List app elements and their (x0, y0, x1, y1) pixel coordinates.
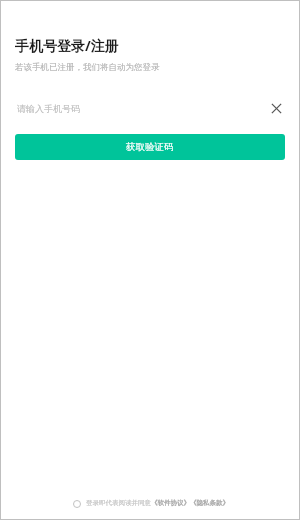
staticText: 手机号登录/注册 (15, 36, 119, 55)
button[interactable]: 请输入手机号码 (0, 94, 300, 122)
button[interactable]: Clear phone number (266, 98, 286, 118)
button[interactable]: 获取验证码 (15, 134, 285, 160)
staticText: 登录即代表阅读并同意 (86, 499, 151, 507)
staticText: 获取验证码 (126, 141, 174, 153)
staticText: 请输入手机号码 (17, 103, 80, 114)
button[interactable]: 《软件协议》 (151, 499, 190, 507)
staticText: 若该手机已注册，我们将自动为您登录 (15, 62, 160, 73)
button[interactable]: 《隐私条款》 (190, 499, 229, 507)
button[interactable]: 登录即代表阅读并同意 (0, 492, 300, 514)
